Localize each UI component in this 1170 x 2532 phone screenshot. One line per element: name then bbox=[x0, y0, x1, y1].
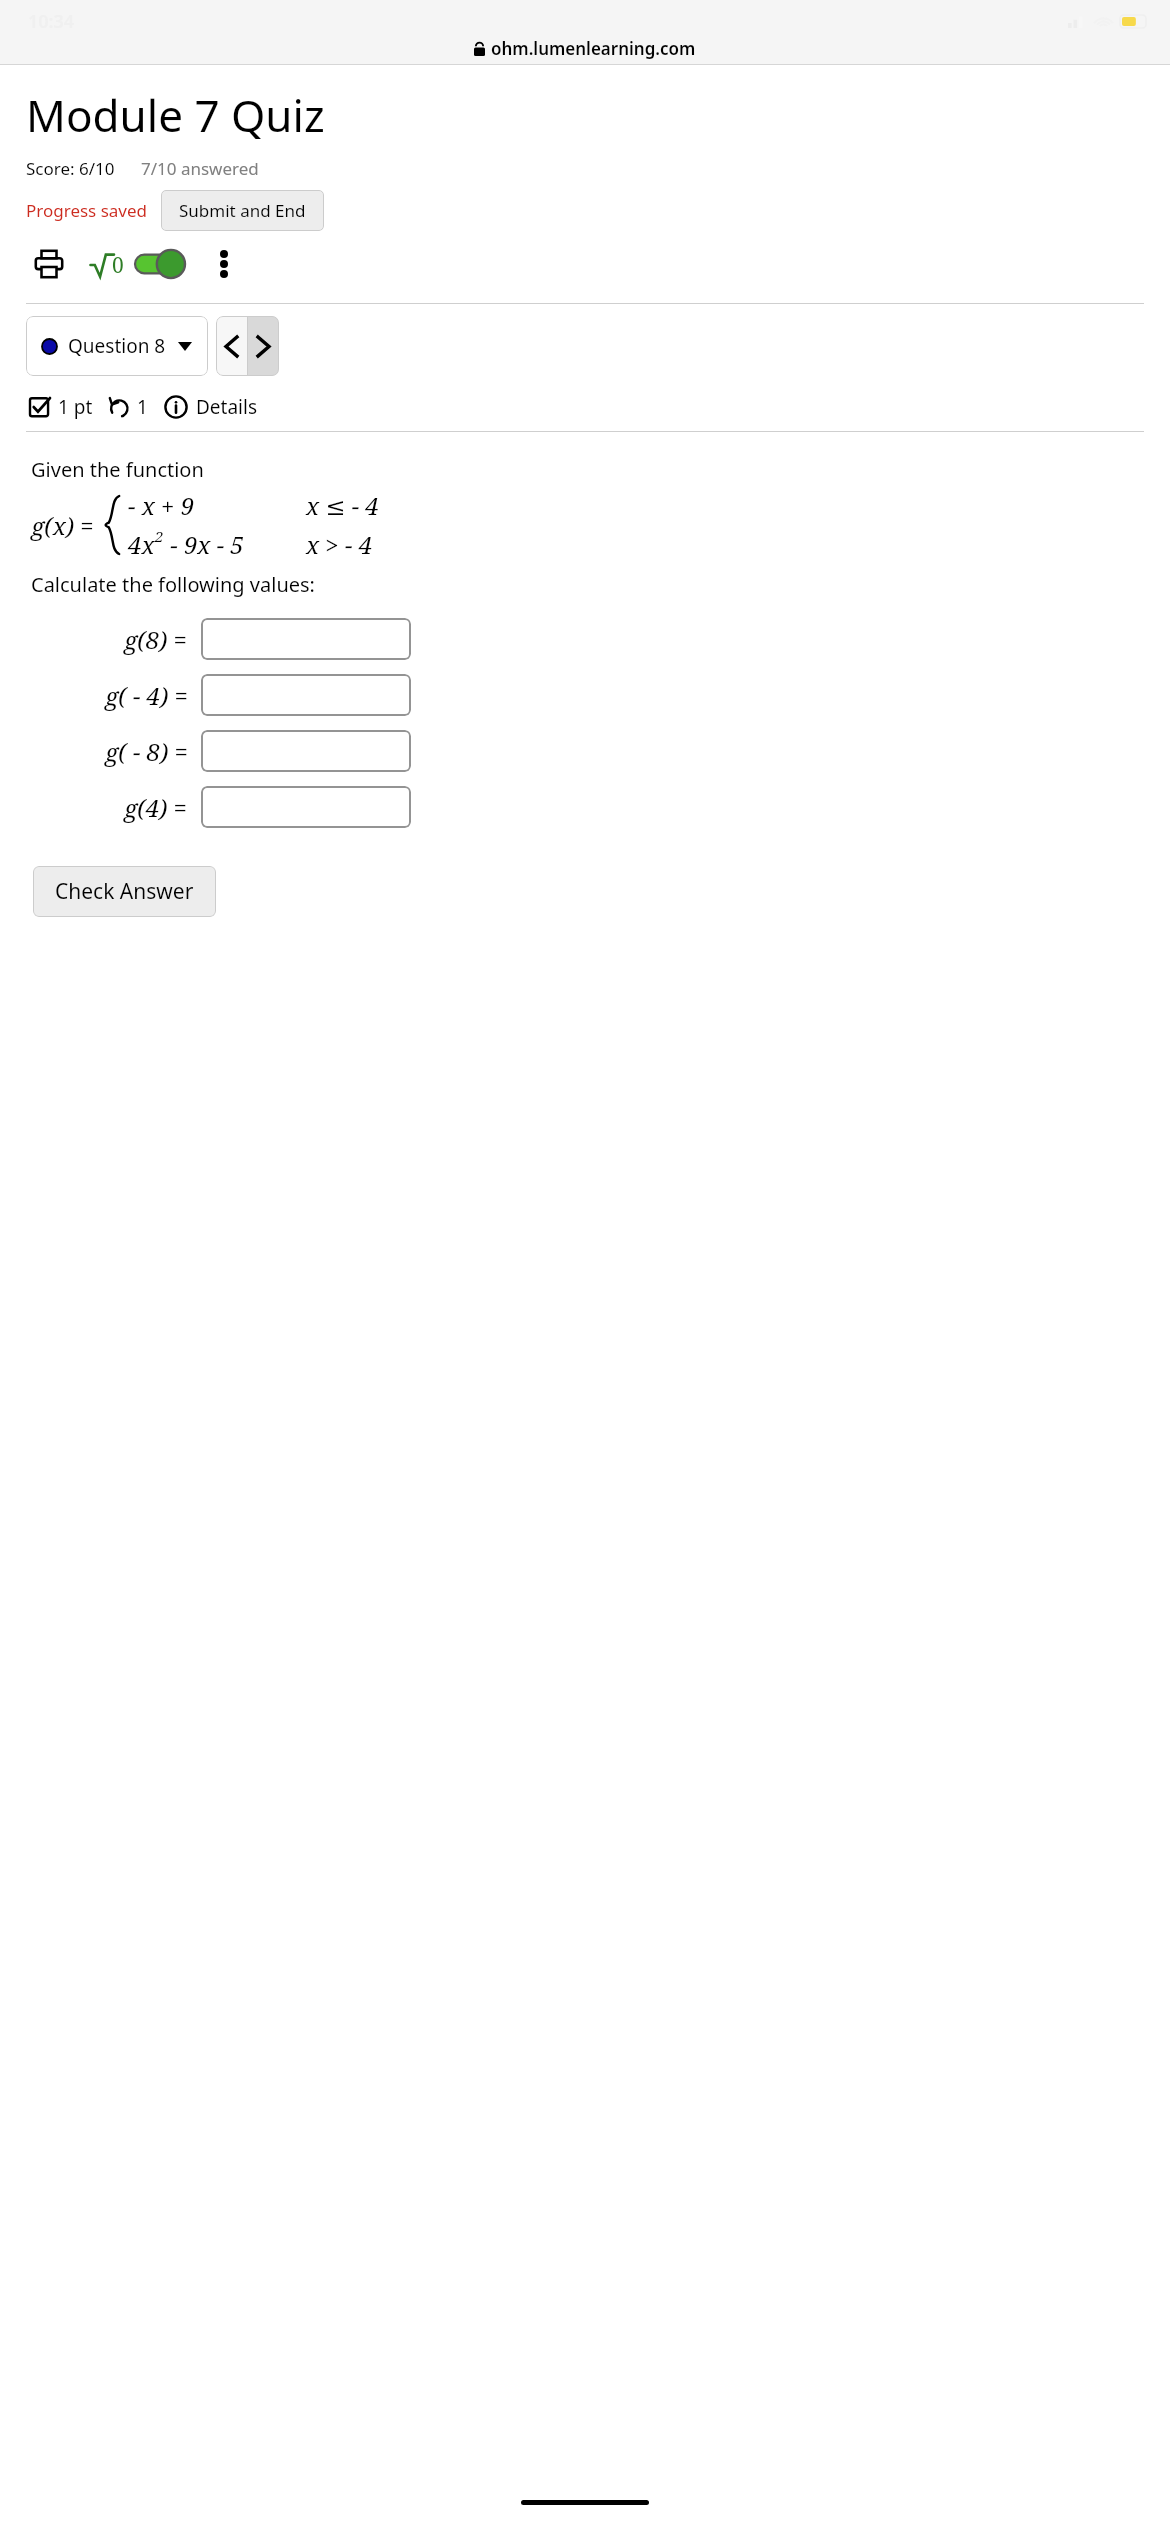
staticText: Details bbox=[196, 394, 258, 420]
staticText: Module 7 Quiz bbox=[26, 85, 325, 145]
staticText: x > − 4 bbox=[306, 528, 373, 561]
staticText: g(4) = bbox=[124, 791, 188, 824]
staticText: Given the function bbox=[31, 456, 204, 483]
button[interactable]: Next question bbox=[248, 316, 279, 376]
staticText: Submit and End bbox=[179, 199, 306, 222]
staticText: g(x) = bbox=[31, 509, 94, 542]
staticText: Question 8 bbox=[68, 333, 166, 359]
staticText: Score: 6/10 bbox=[26, 157, 115, 180]
button[interactable]: Math keyboard bbox=[88, 250, 128, 279]
button[interactable]: Address bar bbox=[0, 37, 1170, 60]
staticText: 0 bbox=[112, 251, 124, 280]
staticText: x ≤ − 4 bbox=[306, 489, 379, 522]
button[interactable]: Answer field 2 bbox=[201, 674, 411, 716]
staticText: − 9x − 5 bbox=[164, 528, 244, 561]
staticText: Calculate the following values: bbox=[31, 571, 315, 598]
button[interactable]: Answer field 3 bbox=[201, 730, 411, 772]
staticText: g( − 4) = bbox=[105, 679, 188, 712]
staticText: g( − 8) = bbox=[105, 735, 188, 768]
staticText: 1 pt bbox=[58, 394, 93, 420]
staticText: 4x bbox=[128, 528, 155, 561]
button[interactable]: More options bbox=[202, 242, 246, 286]
staticText: 1 bbox=[137, 394, 148, 420]
button[interactable]: Print bbox=[26, 241, 72, 287]
staticText: ohm.lumenlearning.com bbox=[491, 37, 696, 60]
button[interactable]: Previous question bbox=[216, 316, 247, 376]
button[interactable]: Details bbox=[164, 394, 258, 420]
button[interactable]: Toggle math input bbox=[132, 244, 188, 284]
staticText: Check Answer bbox=[55, 877, 194, 906]
staticText: 7/10 answered bbox=[141, 157, 259, 180]
button[interactable]: Submit and End bbox=[161, 190, 324, 231]
button[interactable]: Question 8 bbox=[26, 316, 208, 376]
staticText: 2 bbox=[155, 526, 164, 546]
button[interactable]: Check Answer bbox=[33, 866, 216, 917]
button[interactable]: Answer field 1 bbox=[201, 618, 411, 660]
button[interactable]: Answer field 4 bbox=[201, 786, 411, 828]
staticText: Progress saved bbox=[26, 199, 148, 222]
staticText: g(8) = bbox=[124, 623, 188, 656]
staticText: − x + 9 bbox=[128, 489, 195, 522]
